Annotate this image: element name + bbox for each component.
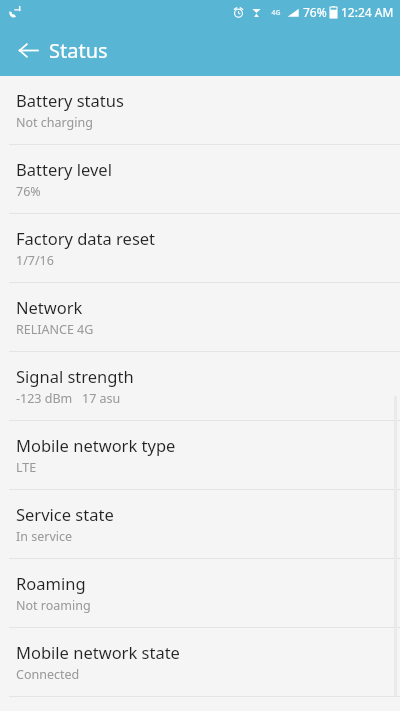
staticText: Mobile network type (16, 434, 176, 456)
staticText: -123 dBm 17 asu (16, 390, 121, 407)
button[interactable]: Signal strength (0, 352, 400, 420)
staticText: Service state (16, 503, 114, 525)
button[interactable]: Battery status (0, 76, 400, 144)
button[interactable]: Network (0, 283, 400, 351)
staticText: 76% (303, 4, 327, 20)
button[interactable]: Mobile network type (0, 421, 400, 489)
button[interactable]: Mobile network state (0, 628, 400, 696)
staticText: 76% (16, 183, 41, 200)
staticText: Not roaming (16, 597, 91, 614)
button[interactable]: Navigate up (10, 32, 46, 68)
staticText: 1/7/16 (16, 252, 54, 269)
staticText: Battery level (16, 158, 112, 180)
staticText: Network (16, 296, 83, 318)
button[interactable]: Battery level (0, 145, 400, 213)
staticText: Factory data reset (16, 227, 156, 249)
staticText: 12:24 AM (341, 4, 394, 20)
staticText: In service (16, 528, 73, 545)
staticText: Mobile network state (16, 641, 180, 663)
staticText: RELIANCE 4G (16, 321, 94, 338)
staticText: Battery status (16, 89, 124, 111)
button[interactable]: Roaming (0, 559, 400, 627)
staticText: LTE (16, 459, 37, 476)
button[interactable]: Factory data reset (0, 214, 400, 282)
button[interactable]: Service state (0, 490, 400, 558)
staticText: Connected (16, 666, 80, 683)
staticText: 4G (271, 8, 281, 17)
staticText: Status (49, 37, 108, 64)
staticText: Roaming (16, 572, 86, 594)
staticText: Not charging (16, 114, 93, 131)
staticText: Signal strength (16, 365, 134, 387)
